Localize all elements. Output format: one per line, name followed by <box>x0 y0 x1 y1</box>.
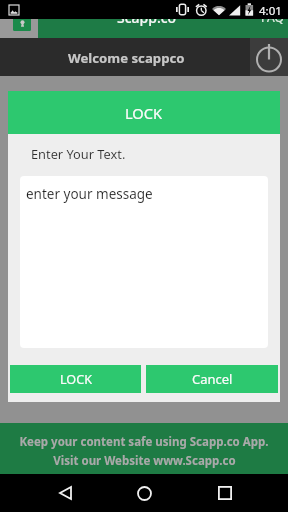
button[interactable]: LOCK <box>10 365 141 393</box>
button[interactable]: Logout <box>250 38 288 76</box>
button[interactable]: enter your message <box>20 176 268 348</box>
staticText: Cancel <box>192 370 233 388</box>
staticText: Keep your content safe using Scapp.co Ap… <box>19 434 269 450</box>
button[interactable]: Recents <box>206 474 246 512</box>
staticText: Enter Your Text. <box>31 145 126 162</box>
staticText: Scapp.co <box>117 19 177 27</box>
staticText: LOCK <box>60 371 92 388</box>
staticText: 4:01 <box>259 3 282 19</box>
staticText: enter your message <box>26 185 153 203</box>
button[interactable]: Cancel <box>146 365 278 393</box>
staticText: Welcome scappco <box>68 49 185 67</box>
button[interactable]: Home <box>124 474 164 512</box>
staticText: FAQ <box>261 19 284 25</box>
button[interactable]: Back <box>42 474 82 512</box>
staticText: Visit our Website www.Scapp.co <box>53 453 236 469</box>
staticText: LOCK <box>125 103 163 123</box>
